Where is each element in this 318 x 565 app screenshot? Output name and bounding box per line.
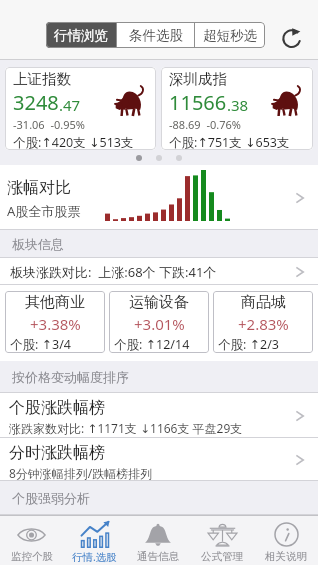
staticText: 个股涨跌幅榜 bbox=[9, 398, 105, 418]
staticText: 个股: ↑2/3 bbox=[218, 336, 280, 353]
staticText: 个股强弱分析 bbox=[12, 490, 90, 506]
button[interactable]: 涨幅对比 bbox=[0, 165, 318, 230]
staticText: 相关说明 bbox=[265, 550, 307, 563]
button[interactable]: 运输设备 bbox=[109, 291, 209, 353]
staticText: +3.38% bbox=[30, 314, 81, 334]
staticText: 深圳成指 bbox=[169, 70, 227, 88]
staticText: .47 bbox=[59, 95, 81, 115]
staticText: 商品城 bbox=[241, 293, 286, 312]
button[interactable]: 分时涨跌幅榜 bbox=[0, 438, 318, 481]
staticText: 上证指数 bbox=[13, 70, 71, 88]
button[interactable]: 板块涨跌对比: 上涨:68个 下跌:41个 bbox=[0, 258, 318, 285]
staticText: 个股: ↑3/4 bbox=[10, 336, 72, 353]
staticText: 个股:↑751支 ↓653支 bbox=[169, 134, 290, 150]
button[interactable]: 行情.选股 bbox=[63, 516, 126, 565]
staticText: -31.06 -0.95% bbox=[13, 117, 85, 132]
staticText: 监控个股 bbox=[11, 550, 53, 563]
staticText: 板块涨跌对比: 上涨:68个 下跌:41个 bbox=[10, 263, 217, 281]
staticText: 其他商业 bbox=[25, 293, 85, 312]
staticText: +3.01% bbox=[134, 314, 185, 334]
staticText: 个股:↑420支 ↓513支 bbox=[13, 134, 134, 150]
staticText: 公式管理 bbox=[201, 550, 243, 563]
staticText: 3248 bbox=[13, 89, 59, 116]
button[interactable]: 条件选股 bbox=[117, 22, 194, 48]
button[interactable]: 超短秒选 bbox=[195, 22, 265, 48]
staticText: 涨跌家数对比: ↑1171支 ↓1166支 平盘29支 bbox=[9, 420, 243, 436]
staticText: 行情.选股 bbox=[72, 550, 117, 564]
staticText: 通告信息 bbox=[137, 550, 179, 563]
staticText: A股全市股票 bbox=[7, 202, 81, 220]
staticText: 按价格变动幅度排序 bbox=[12, 369, 129, 385]
button[interactable]: 商品城 bbox=[213, 291, 313, 353]
button[interactable]: 通告信息 bbox=[126, 516, 190, 565]
staticText: 行情浏览 bbox=[54, 27, 108, 44]
staticText: 分时涨跌幅榜 bbox=[9, 443, 105, 463]
staticText: 个股: ↑12/14 bbox=[114, 336, 190, 353]
button[interactable]: 其他商业 bbox=[5, 291, 105, 353]
staticText: 8分钟涨幅排列/跌幅榜排列 bbox=[9, 465, 153, 481]
button[interactable]: 上证指数 bbox=[5, 67, 156, 150]
staticText: 超短秒选 bbox=[203, 27, 257, 44]
staticText: 涨幅对比 bbox=[7, 178, 71, 198]
button[interactable]: 监控个股 bbox=[0, 516, 63, 565]
staticText: +2.83% bbox=[238, 314, 289, 334]
staticText: -88.69 -0.76% bbox=[169, 117, 241, 132]
button[interactable]: Refresh bbox=[282, 25, 304, 47]
button[interactable]: 行情浏览 bbox=[46, 22, 116, 48]
button[interactable]: 相关说明 bbox=[254, 516, 318, 565]
staticText: 11566 bbox=[169, 89, 227, 116]
button[interactable]: 深圳成指 bbox=[161, 67, 313, 150]
staticText: 板块信息 bbox=[12, 236, 64, 252]
button[interactable]: 个股涨跌幅榜 bbox=[0, 393, 318, 438]
staticText: 运输设备 bbox=[129, 293, 189, 312]
staticText: .38 bbox=[227, 95, 249, 115]
button[interactable]: 公式管理 bbox=[190, 516, 254, 565]
staticText: 条件选股 bbox=[129, 27, 183, 44]
